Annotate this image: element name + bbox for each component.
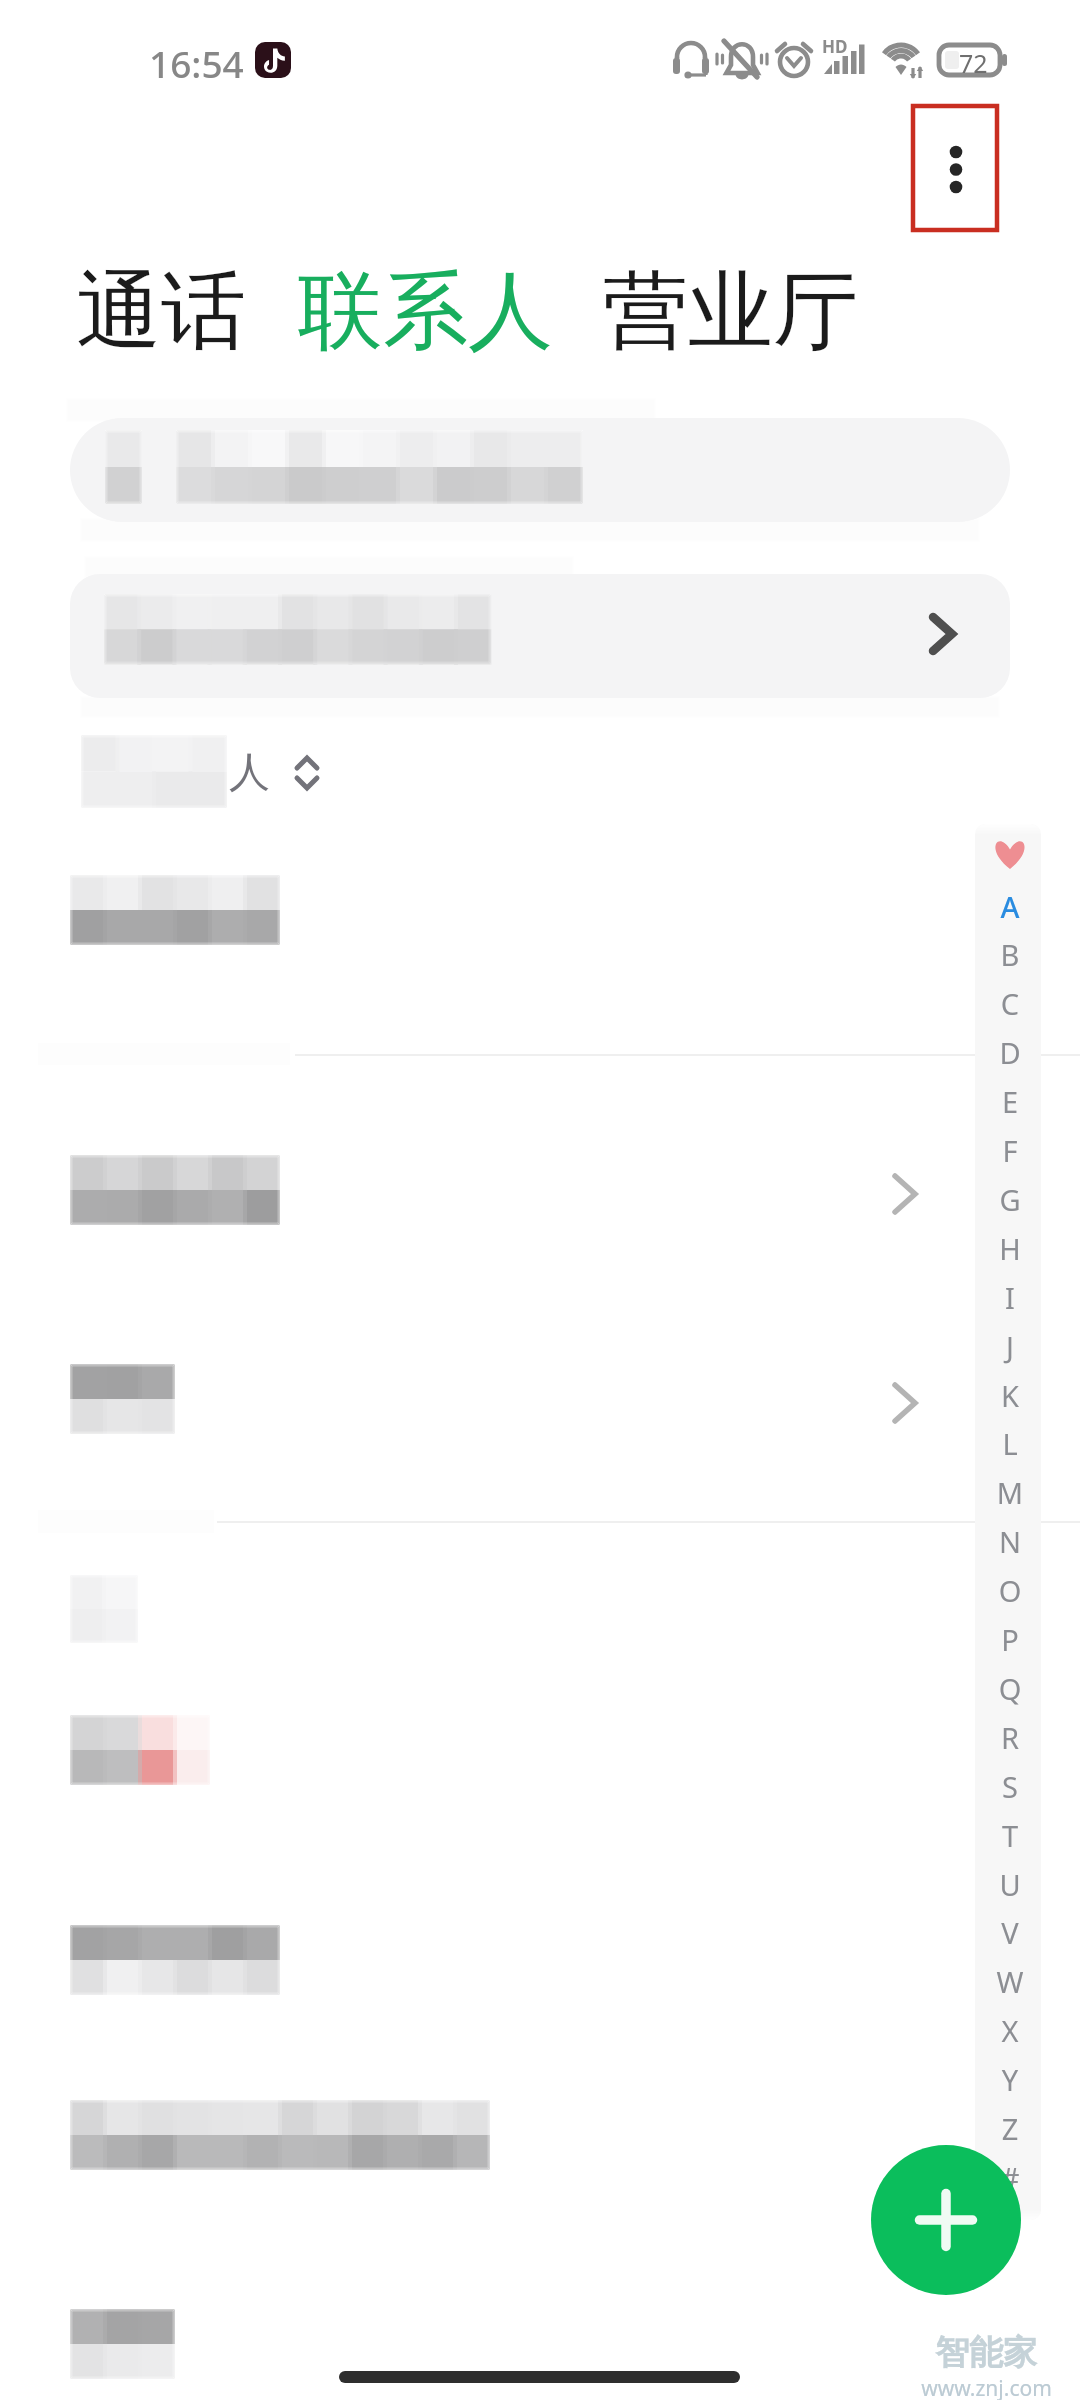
button[interactable]: 通话: [76, 258, 246, 365]
staticText: M: [977, 1473, 1041, 1512]
staticText: B: [977, 935, 1041, 974]
button[interactable]: Contact 6: [0, 1887, 960, 2033]
button[interactable]: Contact 8: [0, 2271, 960, 2400]
button[interactable]: Contact 1: [0, 837, 960, 983]
staticText: 16:54: [149, 38, 244, 88]
staticText: 联系人: [298, 258, 553, 365]
staticText: #: [977, 2158, 1041, 2197]
staticText: 人: [229, 747, 270, 799]
button[interactable]: Contact 7: [0, 2062, 960, 2208]
button[interactable]: Contact 2: [0, 1117, 960, 1263]
button[interactable]: Contact 3: [0, 1326, 960, 1472]
staticText: G: [977, 1180, 1041, 1219]
staticText: C: [977, 984, 1041, 1023]
button[interactable]: Alphabet index: [975, 824, 1041, 2220]
staticText: 通话: [76, 258, 246, 365]
button[interactable]: My card: [70, 574, 1010, 698]
staticText: www.znj.com: [921, 2374, 1052, 2400]
staticText: L: [977, 1424, 1041, 1463]
staticText: X: [977, 2011, 1041, 2050]
staticText: 72: [959, 46, 988, 80]
button[interactable]: Contact 5: [0, 1677, 960, 1823]
button[interactable]: 人: [0, 730, 1080, 820]
staticText: V: [977, 1913, 1041, 1952]
staticText: Y: [977, 2060, 1041, 2099]
staticText: F: [977, 1131, 1041, 1170]
staticText: W: [977, 1962, 1041, 2001]
button[interactable]: 联系人: [298, 258, 553, 365]
staticText: Z: [977, 2109, 1041, 2148]
staticText: O: [977, 1571, 1041, 1610]
staticText: K: [977, 1376, 1041, 1415]
staticText: S: [977, 1767, 1041, 1806]
staticText: 智能家: [935, 2331, 1037, 2374]
staticText: H: [977, 1229, 1041, 1268]
staticText: E: [977, 1082, 1041, 1121]
staticText: J: [977, 1327, 1041, 1366]
staticText: A: [977, 887, 1041, 926]
button[interactable]: Add contact: [871, 2145, 1021, 2295]
staticText: D: [977, 1033, 1041, 1072]
staticText: HD: [822, 35, 848, 58]
staticText: Q: [977, 1669, 1041, 1708]
button[interactable]: More options: [913, 106, 997, 230]
staticText: R: [977, 1718, 1041, 1757]
staticText: T: [977, 1816, 1041, 1855]
staticText: N: [977, 1522, 1041, 1561]
staticText: 营业厅: [603, 258, 858, 365]
staticText: U: [977, 1865, 1041, 1904]
button[interactable]: 营业厅: [603, 258, 858, 365]
button[interactable]: Search contacts: [70, 418, 1010, 522]
staticText: P: [977, 1620, 1041, 1659]
staticText: I: [977, 1278, 1041, 1317]
